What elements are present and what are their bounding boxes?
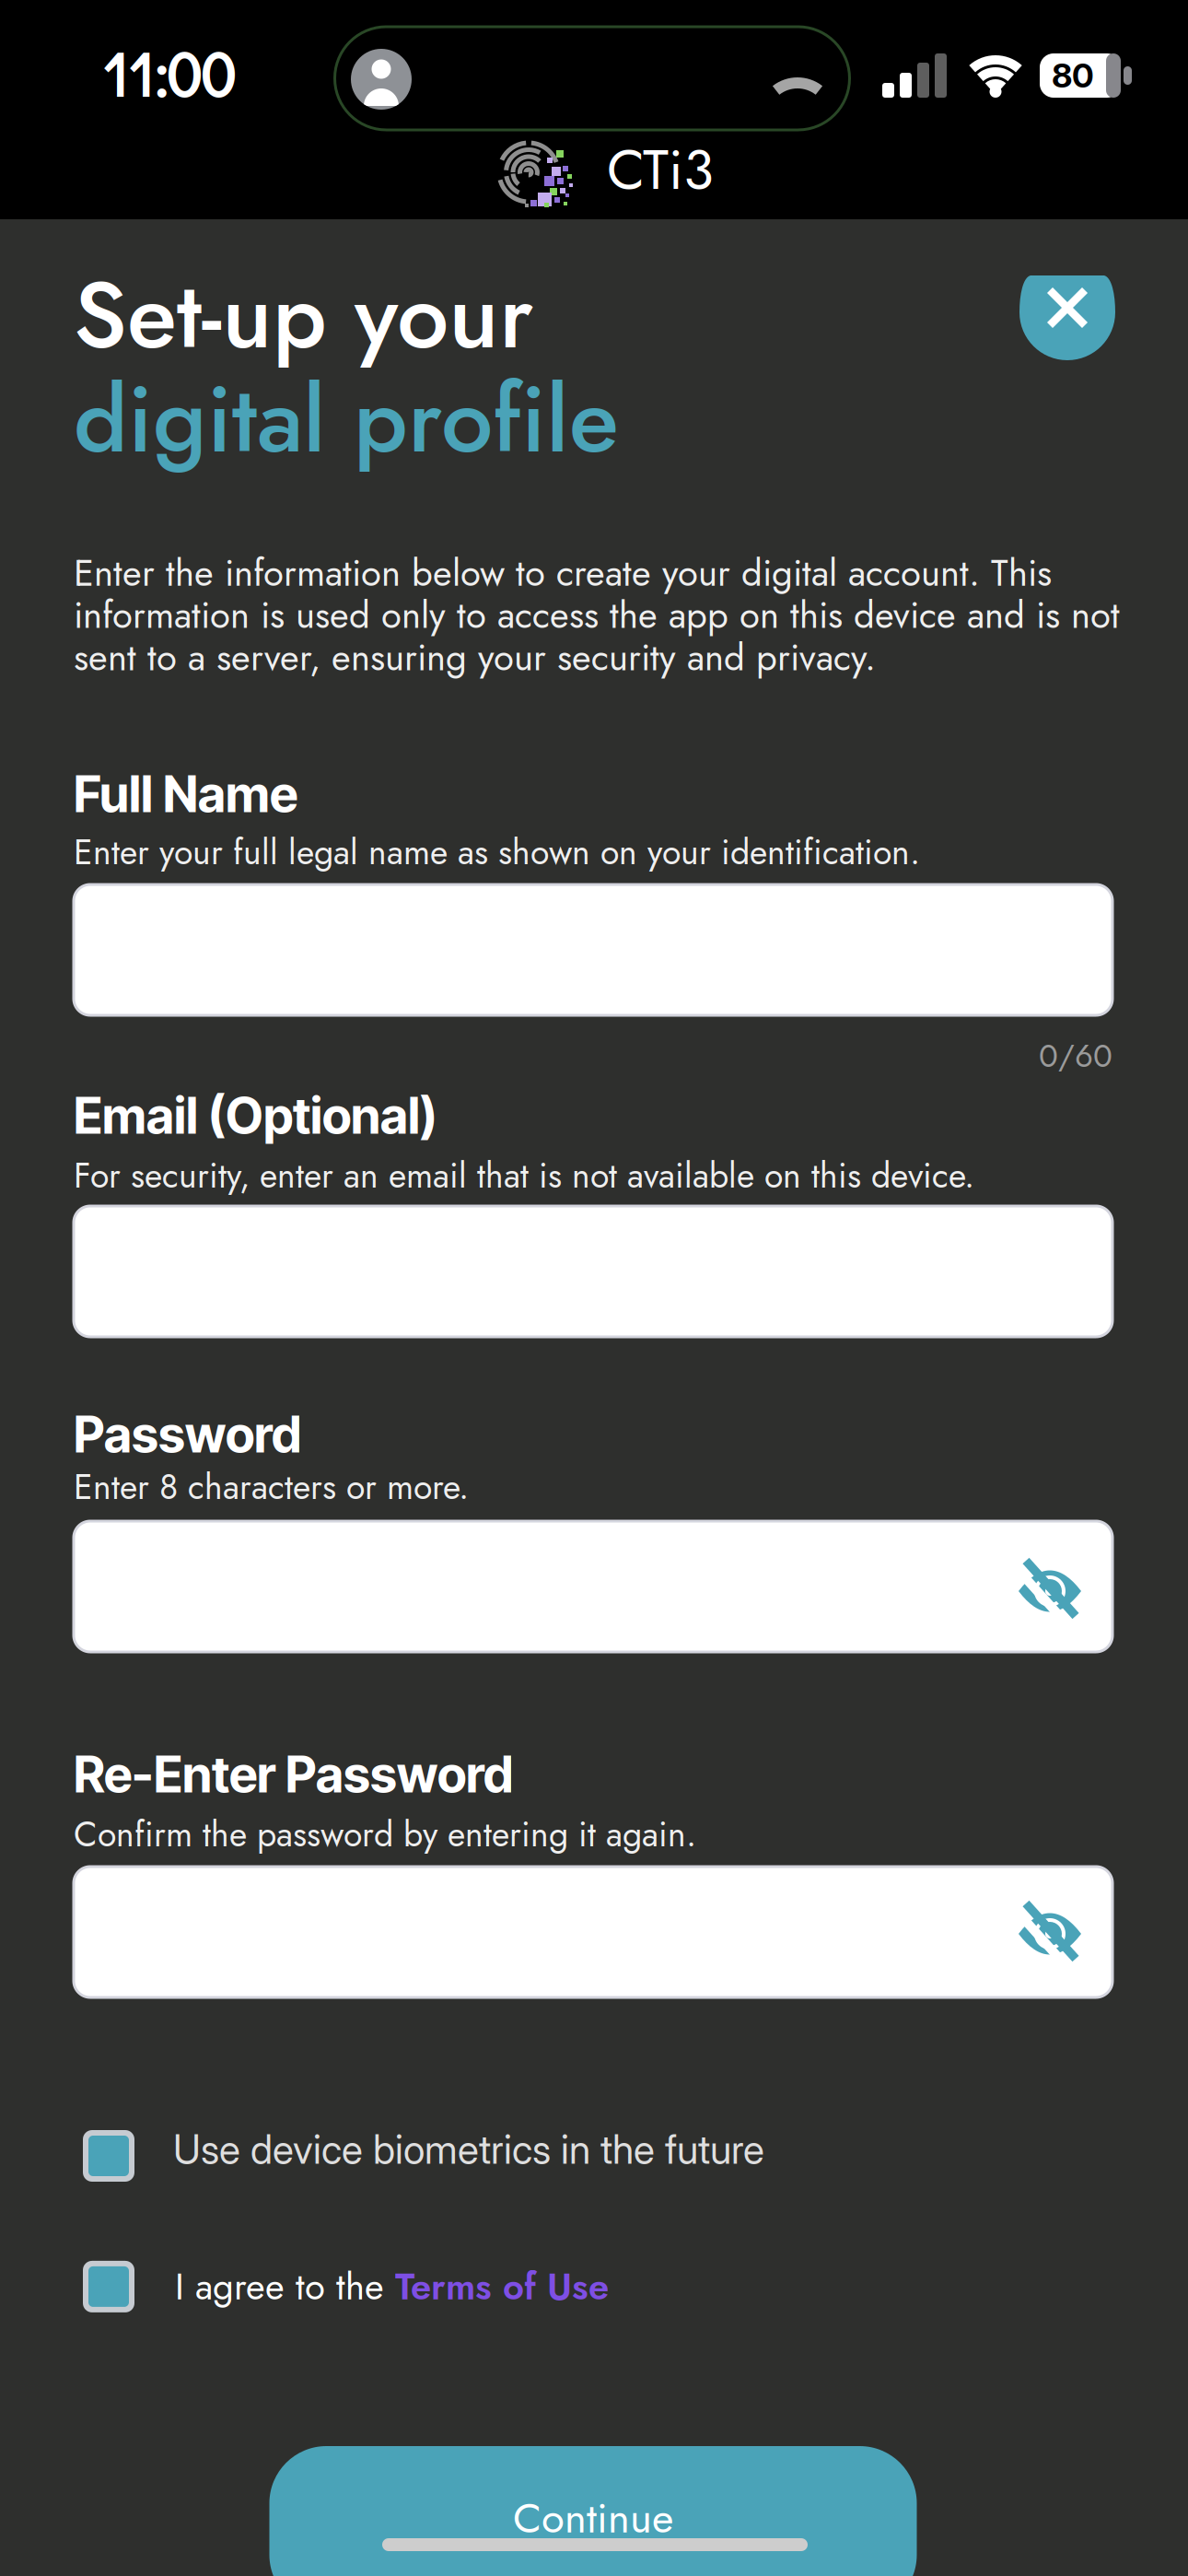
staticText: Enter 8 characters or more. bbox=[74, 1462, 469, 1512]
staticText: Use device biometrics in the future bbox=[173, 2126, 764, 2173]
button[interactable]: Show password bbox=[1015, 1903, 1085, 1964]
button[interactable]: Use device biometrics in the future bbox=[83, 2130, 764, 2182]
staticText: I agree to the bbox=[175, 2260, 395, 2313]
staticText: Enter the information below to create yo… bbox=[74, 546, 1052, 600]
button[interactable]: Show password bbox=[1015, 1561, 1085, 1622]
staticText: 0/60 bbox=[1039, 1033, 1112, 1079]
staticText: 80 bbox=[1052, 55, 1094, 96]
staticText: Full Name bbox=[74, 764, 297, 824]
staticText: Re-Enter Password bbox=[74, 1744, 513, 1804]
staticText: digital profile bbox=[74, 353, 619, 486]
staticText: CTi3 bbox=[607, 129, 714, 210]
staticText: Set-up your bbox=[74, 249, 533, 382]
button[interactable]: Password bbox=[74, 1521, 1112, 1652]
staticText: Email (Optional) bbox=[74, 1085, 437, 1146]
staticText: Confirm the password by entering it agai… bbox=[74, 1809, 696, 1859]
staticText: information is used only to access the a… bbox=[74, 589, 1120, 642]
button[interactable]: Continue bbox=[269, 2446, 917, 2576]
staticText: Password bbox=[74, 1404, 301, 1464]
staticText: For security, enter an email that is not… bbox=[74, 1151, 974, 1200]
staticText: 11:00 bbox=[102, 33, 235, 113]
button[interactable]: Close bbox=[1019, 275, 1115, 360]
button[interactable]: Re-Enter Password bbox=[74, 1867, 1112, 1997]
staticText: Continue bbox=[513, 2488, 673, 2548]
button[interactable]: Full Name bbox=[74, 884, 1112, 1015]
staticText: Enter your full legal name as shown on y… bbox=[74, 827, 920, 877]
button[interactable]: I agree to the bbox=[83, 2260, 609, 2313]
staticText: Terms of Use bbox=[395, 2260, 609, 2313]
staticText: sent to a server, ensuring your security… bbox=[74, 631, 876, 684]
button[interactable]: Email bbox=[74, 1206, 1112, 1337]
